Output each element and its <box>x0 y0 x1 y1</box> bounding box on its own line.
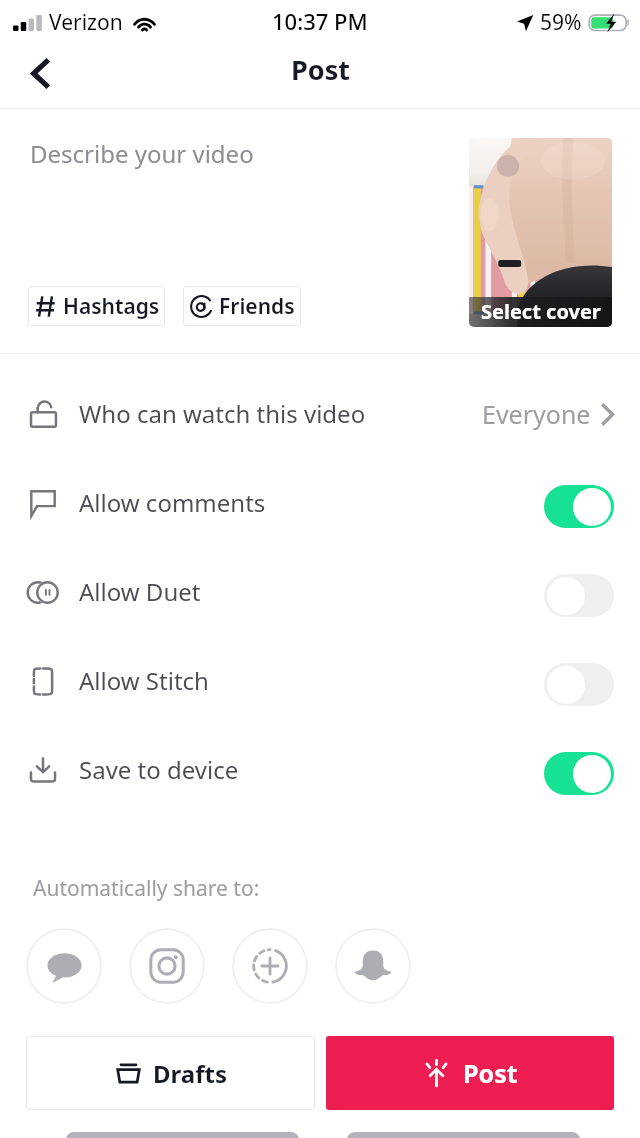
button[interactable]: Save to device <box>0 725 640 814</box>
button[interactable]: Allow comments <box>0 458 640 547</box>
staticText: Post <box>463 1056 518 1090</box>
staticText: Allow comments <box>79 486 266 519</box>
staticText: Verizon <box>49 8 123 37</box>
staticText: Automatically share to: <box>33 874 260 903</box>
staticText: Drafts <box>153 1057 227 1090</box>
button[interactable]: Allow Stitch <box>0 636 640 725</box>
staticText: Allow Duet <box>79 575 201 608</box>
button[interactable]: Select cover <box>469 138 612 327</box>
button[interactable]: Snapchat <box>335 928 411 1004</box>
button[interactable]: Who can watch this video <box>0 369 640 458</box>
staticText: Hashtags <box>63 292 160 321</box>
button[interactable]: Instagram <box>129 928 205 1004</box>
button[interactable]: Hashtags <box>28 286 165 326</box>
button[interactable]: Off <box>544 663 614 706</box>
staticText: Allow Stitch <box>79 664 209 697</box>
staticText: Save to device <box>79 753 239 786</box>
staticText: 10:37 PM <box>272 6 368 36</box>
staticText: Friends <box>219 292 295 321</box>
button[interactable]: Post <box>326 1036 614 1110</box>
button[interactable]: Drafts <box>26 1036 315 1110</box>
button[interactable]: Messages <box>26 928 102 1004</box>
staticText: 59% <box>540 8 582 37</box>
staticText: Everyone <box>482 397 591 431</box>
staticText: Who can watch this video <box>79 397 366 430</box>
button[interactable]: On <box>544 485 614 528</box>
button[interactable]: Off <box>544 574 614 617</box>
button[interactable]: Back <box>12 45 68 101</box>
button[interactable]: Allow Duet <box>0 547 640 636</box>
button[interactable]: On <box>544 752 614 795</box>
staticText: Post <box>291 51 350 88</box>
staticText: Select cover <box>481 298 601 325</box>
button[interactable]: Instagram Stories <box>232 928 308 1004</box>
button[interactable]: Friends <box>183 286 301 326</box>
staticText: Describe your video <box>30 137 254 170</box>
